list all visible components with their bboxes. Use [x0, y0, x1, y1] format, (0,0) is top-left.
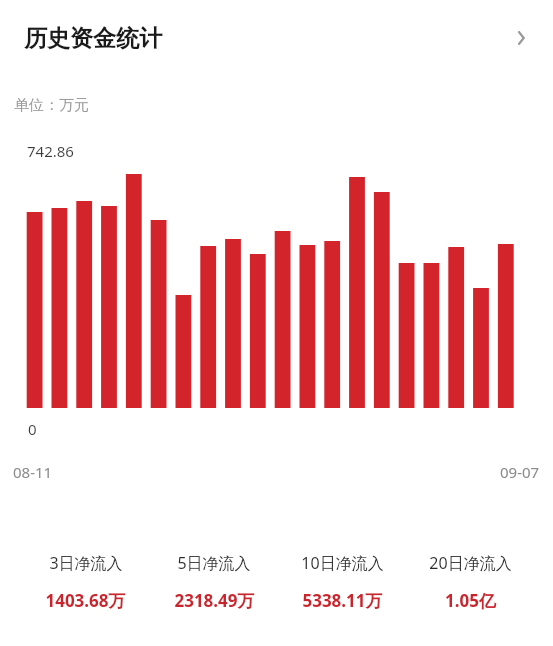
staticText: 1403.68万 — [45, 589, 126, 612]
staticText: 0 — [28, 419, 37, 439]
button[interactable]: 查看更多 — [501, 18, 541, 58]
button[interactable]: 历史资金统计 — [0, 0, 553, 76]
staticText: 742.86 — [27, 141, 74, 161]
button[interactable]: 20日净流入 — [406, 552, 534, 612]
staticText: 5338.11万 — [302, 589, 383, 612]
staticText: 单位：万元 — [14, 96, 89, 115]
staticText: 08-11 — [13, 462, 53, 482]
button[interactable]: 5日净流入 — [150, 552, 278, 612]
button[interactable]: 3日净流入 — [21, 552, 150, 612]
staticText: 5日净流入 — [177, 552, 251, 574]
staticText: 20日净流入 — [429, 552, 512, 574]
button[interactable]: 3日净流入 — [21, 526, 534, 638]
staticText: 历史资金统计 — [24, 24, 162, 53]
staticText: 3日净流入 — [49, 552, 123, 574]
staticText: 10日净流入 — [301, 552, 384, 574]
staticText: 2318.49万 — [174, 589, 255, 612]
staticText: 1.05亿 — [445, 589, 496, 612]
staticText: 09-07 — [500, 462, 540, 482]
button[interactable]: 10日净流入 — [278, 552, 406, 612]
